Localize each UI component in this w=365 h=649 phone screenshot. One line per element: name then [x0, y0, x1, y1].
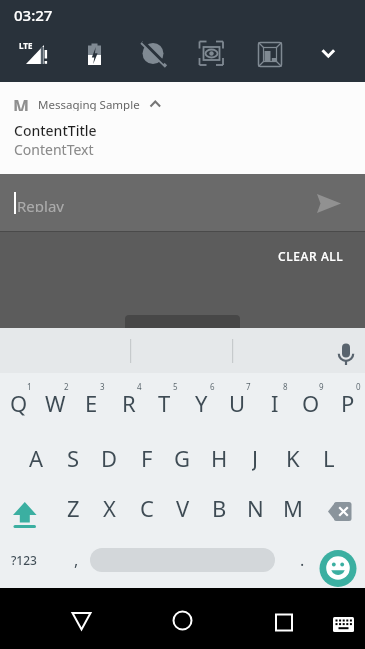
button[interactable]: J [237, 443, 274, 471]
staticText: ContentText [14, 140, 94, 156]
button[interactable]: Y [183, 388, 220, 416]
staticText: W [45, 388, 66, 416]
button[interactable] [330, 336, 362, 368]
staticText: N [247, 493, 264, 521]
button[interactable]: B [201, 493, 238, 521]
button[interactable]: M [0, 82, 365, 174]
staticText: F [141, 443, 153, 471]
button[interactable]: CLEAR ALL [240, 248, 344, 264]
staticText: J [252, 443, 259, 471]
staticText: 7 [246, 381, 251, 392]
staticText: M [13, 95, 29, 111]
staticText: H [211, 443, 228, 471]
button[interactable]: X [91, 493, 128, 521]
button[interactable] [90, 548, 275, 572]
button[interactable]: P [329, 388, 365, 416]
button[interactable]: T [146, 388, 183, 416]
staticText: 2 [64, 381, 69, 392]
staticText: B [212, 493, 227, 521]
staticText: 6 [210, 381, 215, 392]
button[interactable]: Replay [0, 174, 365, 231]
button[interactable]: N [237, 493, 274, 521]
button[interactable] [324, 497, 360, 527]
button[interactable]: C [128, 493, 165, 521]
staticText: 3 [100, 381, 105, 392]
staticText: P [341, 388, 355, 416]
staticText: 8 [283, 381, 288, 392]
staticText: Messaging Sample [38, 97, 140, 111]
staticText: ContentTitle [14, 121, 97, 137]
button[interactable] [163, 600, 201, 638]
staticText: E [85, 388, 98, 416]
staticText: S [67, 443, 80, 471]
staticText: , [74, 549, 79, 571]
button[interactable]: V [164, 493, 201, 521]
staticText: R [122, 388, 136, 416]
staticText: . [300, 549, 305, 571]
staticText: O [302, 388, 320, 416]
staticText: CLEAR ALL [278, 248, 344, 264]
button[interactable]: E [73, 388, 110, 416]
staticText: ?123 [11, 552, 37, 568]
staticText: Z [67, 493, 80, 521]
button[interactable]: R [110, 388, 147, 416]
staticText: 1 [27, 381, 32, 392]
button[interactable] [325, 606, 361, 638]
staticText: L [323, 443, 335, 471]
staticText: LTE [19, 40, 33, 50]
button[interactable]: Z [55, 493, 92, 521]
button[interactable] [63, 600, 101, 638]
staticText: 9 [319, 381, 324, 392]
button[interactable] [314, 40, 342, 68]
staticText: 0 [356, 381, 361, 392]
button[interactable]: W [37, 388, 74, 416]
staticText: M [283, 493, 303, 521]
button[interactable]: K [274, 443, 311, 471]
staticText: I [271, 388, 279, 416]
staticText: U [229, 388, 246, 416]
staticText: T [158, 388, 171, 416]
button[interactable]: O [292, 388, 329, 416]
staticText: G [174, 443, 191, 471]
button[interactable] [310, 188, 348, 218]
staticText: 03:27 [14, 5, 53, 25]
button[interactable] [257, 600, 295, 638]
button[interactable]: ?123 [6, 551, 42, 569]
button[interactable]: , [64, 549, 88, 571]
button[interactable]: A [18, 443, 55, 471]
button[interactable]: M [274, 493, 311, 521]
button[interactable]: . [290, 549, 314, 571]
staticText: D [101, 443, 118, 471]
staticText: V [176, 493, 190, 521]
button[interactable]: U [219, 388, 256, 416]
staticText: 4 [137, 381, 142, 392]
button[interactable]: G [164, 443, 201, 471]
staticText: A [29, 443, 44, 471]
staticText: C [140, 493, 154, 521]
button[interactable]: I [256, 388, 293, 416]
staticText: 5 [173, 381, 178, 392]
staticText: X [103, 493, 116, 521]
staticText: K [286, 443, 300, 471]
staticText: Replay [17, 196, 64, 212]
staticText: Q [10, 388, 28, 416]
button[interactable]: L [310, 443, 347, 471]
button[interactable]: S [55, 443, 92, 471]
button[interactable] [6, 497, 46, 529]
button[interactable]: H [201, 443, 238, 471]
button[interactable]: F [128, 443, 165, 471]
button[interactable] [319, 550, 357, 588]
staticText: Y [195, 388, 208, 416]
button[interactable]: Q [0, 388, 37, 416]
button[interactable]: D [91, 443, 128, 471]
